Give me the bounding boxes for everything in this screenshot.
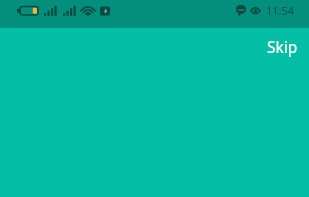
- button[interactable]: Skip: [249, 28, 309, 67]
- other: Visibility: [250, 6, 261, 15]
- other: Wi-Fi: [81, 5, 95, 16]
- staticText: Skip: [267, 36, 298, 57]
- staticText: 11:54: [266, 3, 295, 18]
- other: Silent mode: [100, 6, 110, 16]
- other: Messages: [236, 5, 246, 16]
- other: Mobile signal strength: [44, 5, 59, 16]
- other: Mobile signal strength: [63, 5, 78, 16]
- other: Battery: [17, 5, 38, 16]
